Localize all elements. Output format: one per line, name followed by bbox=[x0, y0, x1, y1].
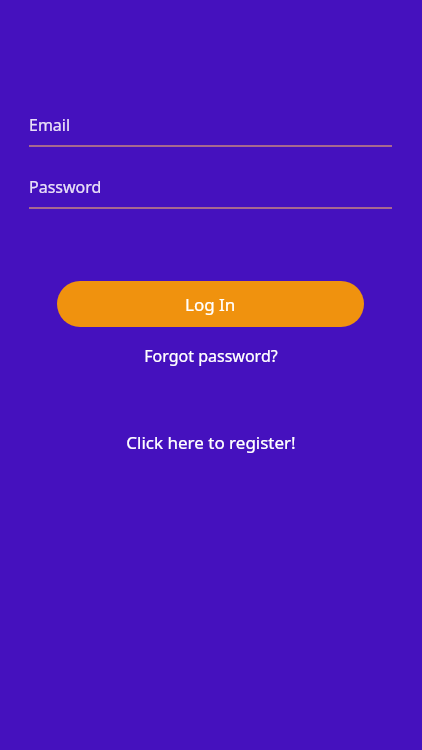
staticText: Log In bbox=[185, 293, 236, 316]
button[interactable]: Forgot password? bbox=[136, 342, 286, 370]
button[interactable]: Log In bbox=[57, 281, 364, 327]
button[interactable]: Password bbox=[29, 176, 392, 209]
staticText: Password bbox=[29, 176, 102, 198]
button[interactable]: Click here to register! bbox=[118, 428, 304, 457]
staticText: Forgot password? bbox=[144, 345, 278, 367]
staticText: Email bbox=[29, 114, 71, 136]
staticText: Click here to register! bbox=[126, 431, 296, 454]
button[interactable]: Email bbox=[29, 114, 392, 147]
